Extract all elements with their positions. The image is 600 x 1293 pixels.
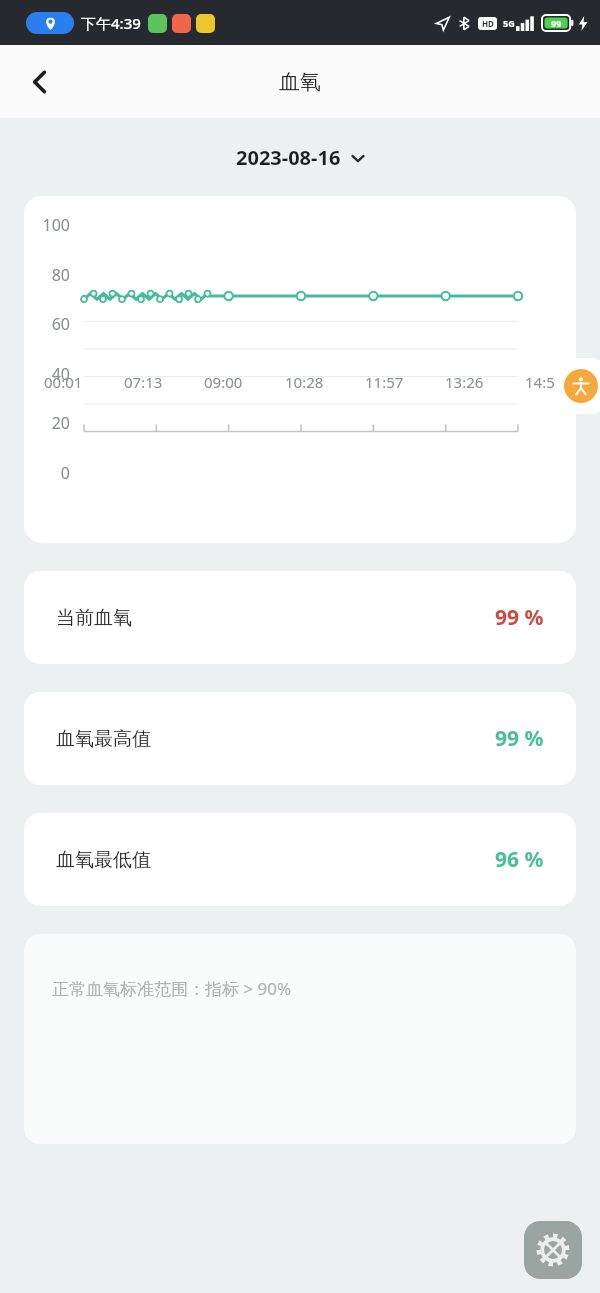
staticText: 99 — [551, 17, 562, 29]
staticText: 14:55 — [525, 372, 564, 392]
staticText: 血氧最高值 — [56, 727, 151, 751]
staticText: 11:57 — [365, 372, 404, 392]
button[interactable]: 2023-08-16 — [226, 138, 375, 177]
staticText: 80 — [24, 264, 70, 286]
button[interactable]: Accessibility — [554, 358, 600, 414]
staticText: 0 — [24, 462, 70, 484]
staticText: 07:13 — [124, 372, 163, 392]
staticText: HD — [482, 18, 494, 29]
staticText: 5G — [503, 17, 515, 29]
button[interactable]: 100 — [24, 196, 576, 543]
staticText: 血氧最低值 — [56, 848, 151, 872]
staticText: 09:00 — [204, 372, 243, 392]
staticText: 13:26 — [445, 372, 484, 392]
staticText: 99 % — [495, 724, 544, 753]
button[interactable]: 血氧最低值 — [24, 813, 576, 906]
button[interactable]: Settings — [524, 1221, 582, 1279]
staticText: 99 % — [495, 603, 544, 632]
staticText: 血氧 — [279, 69, 321, 95]
staticText: 40 — [24, 363, 70, 385]
staticText: 10:28 — [285, 372, 324, 392]
staticText: 20 — [24, 412, 70, 434]
staticText: 当前血氧 — [56, 606, 132, 630]
staticText: 正常血氧标准范围：指标 > 90% — [52, 977, 292, 1000]
button[interactable]: 血氧最高值 — [24, 692, 576, 785]
staticText: 100 — [24, 214, 70, 236]
staticText: 2023-08-16 — [236, 144, 341, 171]
button[interactable]: 当前血氧 — [24, 571, 576, 664]
staticText: 96 % — [495, 845, 544, 874]
staticText: 下午4:39 — [81, 13, 141, 33]
staticText: 00:01 — [44, 372, 83, 392]
staticText: 60 — [24, 313, 70, 335]
button[interactable]: Back — [14, 56, 66, 108]
